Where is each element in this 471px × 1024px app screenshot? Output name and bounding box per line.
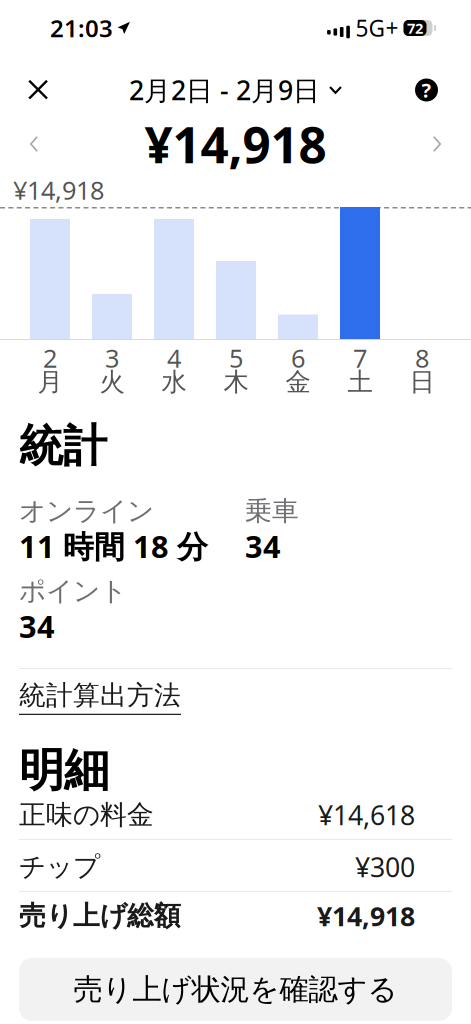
staticText: 売り上げ総額 xyxy=(19,900,181,932)
button[interactable]: 2月2日 - 2月9日 xyxy=(121,66,350,114)
staticText: 3 xyxy=(105,341,119,375)
staticText: 乗車 xyxy=(245,495,299,527)
staticText: ¥14,918 xyxy=(317,898,415,934)
button[interactable]: Next week xyxy=(419,122,455,166)
staticText: 2月2日 - 2月9日 xyxy=(129,72,320,108)
staticText: 統計算出方法 xyxy=(19,679,181,712)
staticText: 4 xyxy=(167,341,181,375)
staticText: 火 xyxy=(99,366,124,397)
staticText: ¥14,918 xyxy=(144,111,326,177)
staticText: 売り上げ状況を確認する xyxy=(73,971,397,1007)
staticText: 34 xyxy=(19,606,55,646)
staticText: 34 xyxy=(245,526,281,566)
button[interactable]: Previous week xyxy=(16,122,52,166)
button[interactable]: 売り上げ状況を確認する xyxy=(19,958,452,1021)
staticText: ? xyxy=(421,77,431,103)
staticText: ¥300 xyxy=(355,849,415,885)
staticText: 統計 xyxy=(19,419,107,473)
staticText: オンライン xyxy=(19,495,154,527)
staticText: 11 時間 18 分 xyxy=(19,526,208,566)
staticText: 土 xyxy=(347,366,372,397)
staticText: 7 xyxy=(353,341,367,375)
staticText: チップ xyxy=(19,851,100,883)
staticText: 21:03 xyxy=(50,12,113,44)
staticText: 水 xyxy=(161,366,186,397)
staticText: 正味の料金 xyxy=(19,799,154,831)
staticText: ¥14,918 xyxy=(13,173,104,207)
staticText: 5 xyxy=(229,341,243,375)
staticText: ¥14,618 xyxy=(318,797,415,833)
staticText: 8 xyxy=(415,341,429,375)
staticText: 5G+ xyxy=(355,13,398,43)
staticText: 明細 xyxy=(19,743,109,798)
staticText: 月 xyxy=(37,366,62,397)
button[interactable]: Help xyxy=(405,67,459,113)
staticText: 木 xyxy=(223,366,248,397)
staticText: 2 xyxy=(43,341,57,375)
staticText: 日 xyxy=(409,366,434,397)
staticText: 6 xyxy=(291,341,305,375)
staticText: 72 xyxy=(407,18,423,38)
button[interactable]: Close xyxy=(12,67,61,112)
staticText: ポイント xyxy=(19,575,127,607)
staticText: 金 xyxy=(285,366,310,397)
button[interactable]: 統計算出方法 xyxy=(19,669,181,721)
